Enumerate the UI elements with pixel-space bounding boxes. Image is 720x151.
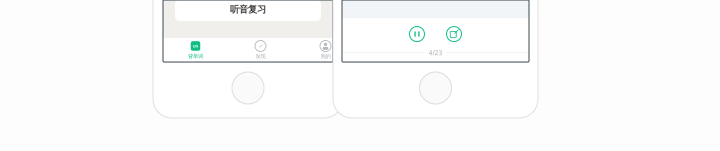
button[interactable]: EN [163,39,228,61]
button[interactable]: 我的 [293,39,358,61]
staticText: EN [193,43,198,49]
staticText: 我的 [320,53,330,60]
button[interactable]: Pause [409,27,424,42]
staticText: 听音复习 [230,4,266,15]
staticText: 4/23 [428,48,442,57]
staticText: 发现 [255,53,265,60]
staticText: 背单词 [188,53,203,60]
button[interactable]: 发现 [228,39,293,61]
button[interactable]: Notes [446,27,461,42]
